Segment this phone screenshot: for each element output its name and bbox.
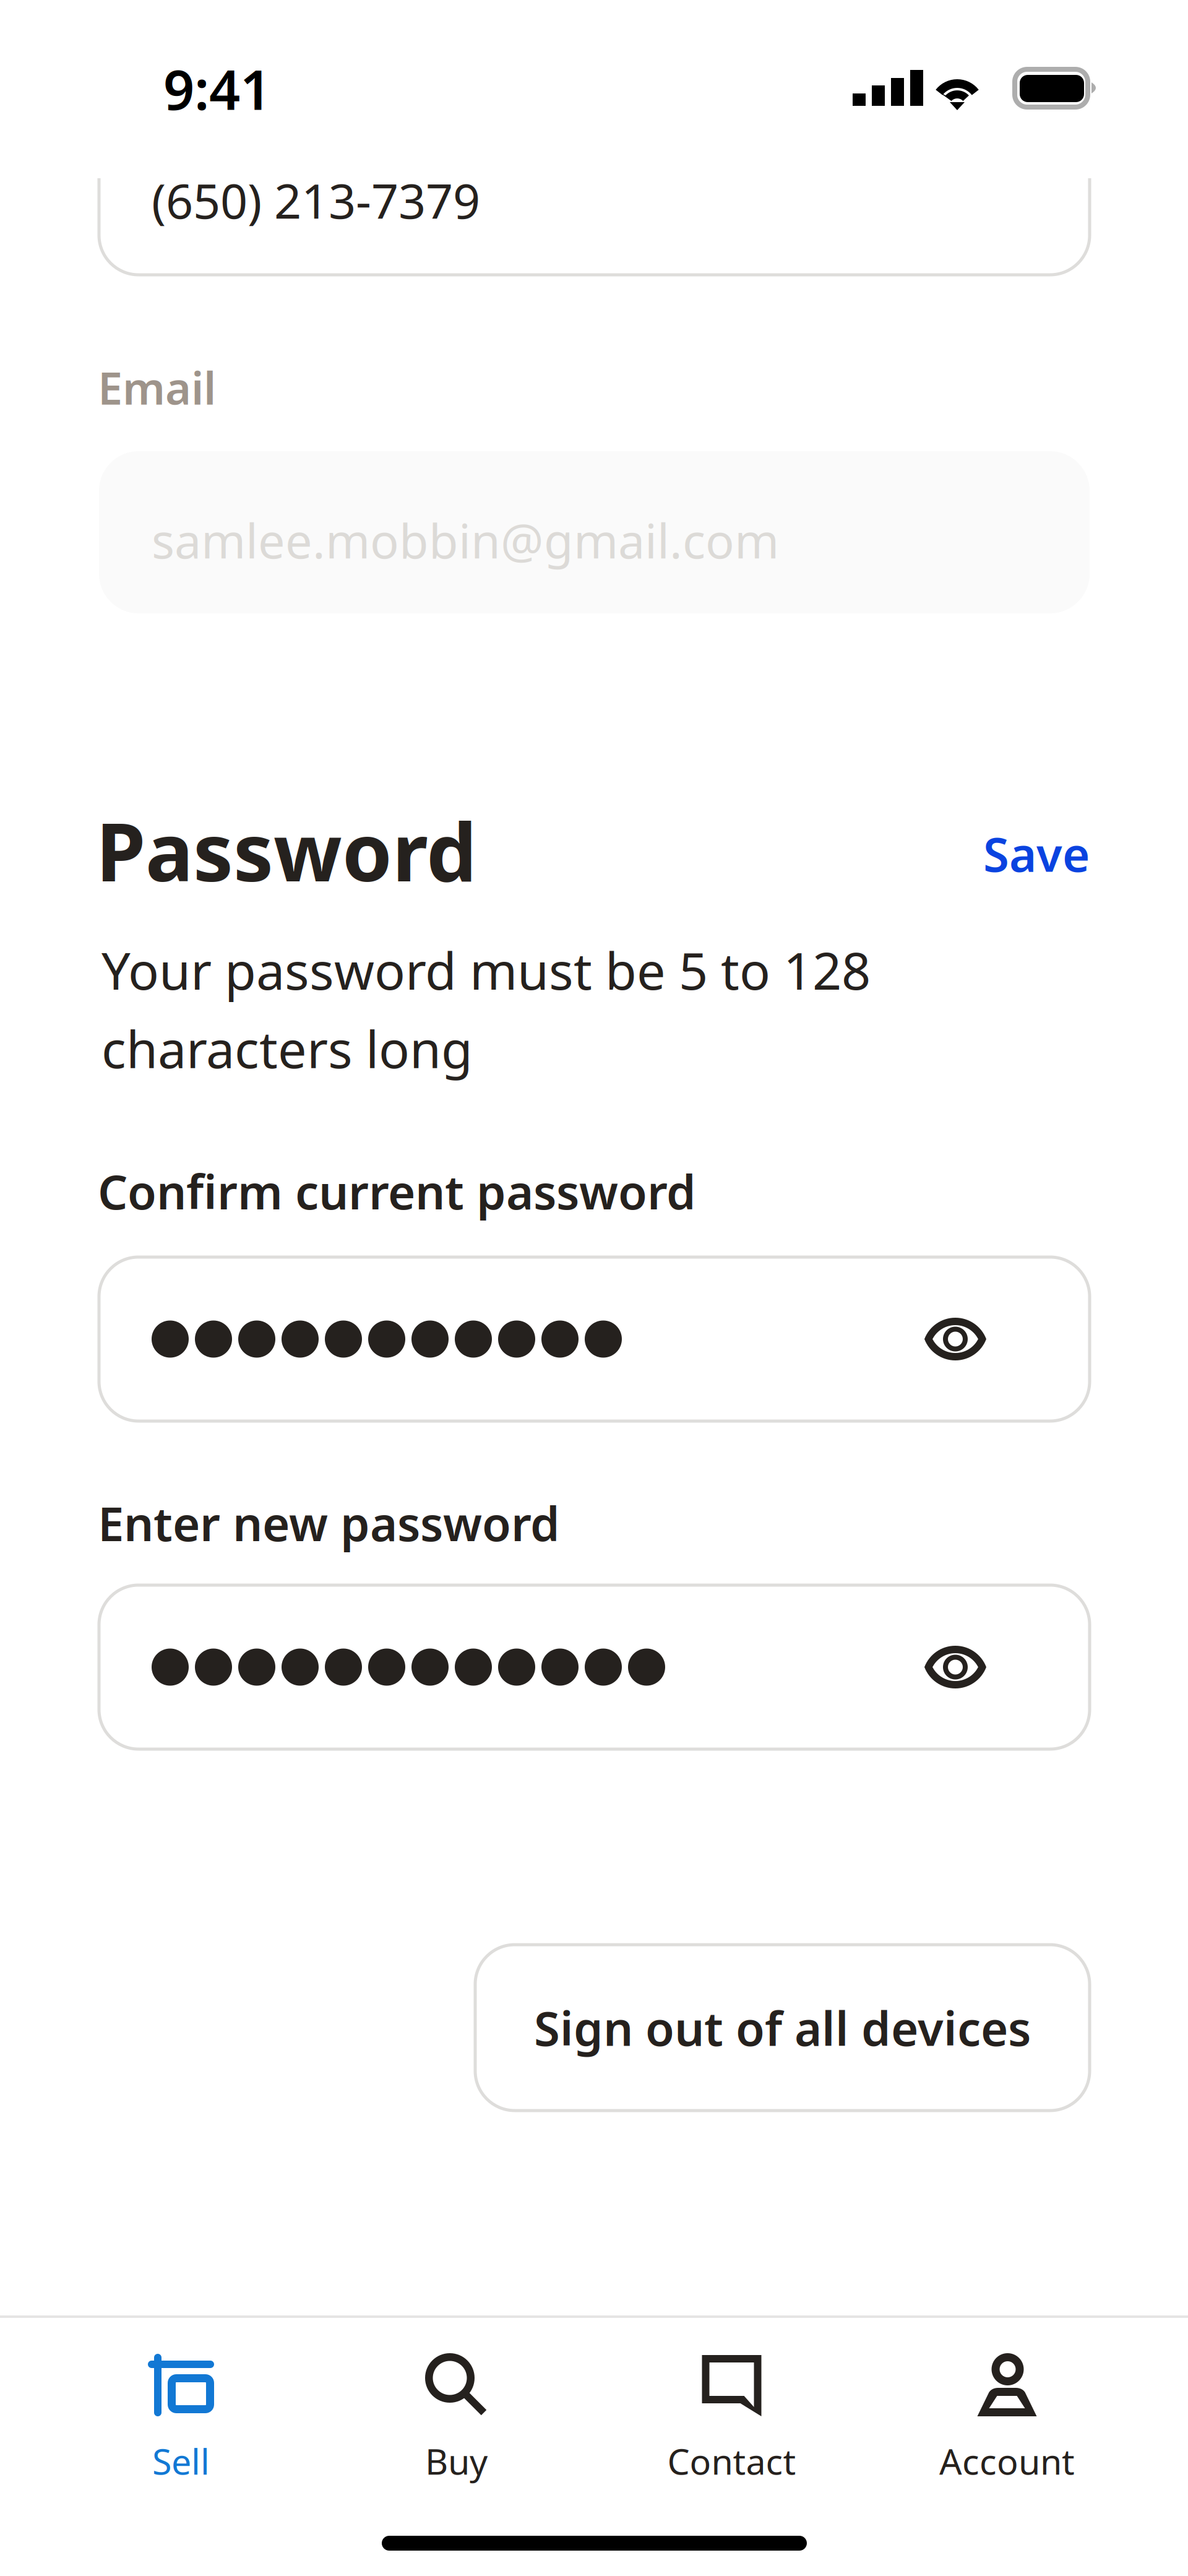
staticText: Contact — [667, 2437, 796, 2484]
button[interactable] — [99, 1585, 1090, 1749]
staticText: Email — [98, 358, 216, 417]
button[interactable]: Sign out of all devices — [475, 1945, 1090, 2111]
button[interactable]: Buy — [319, 2354, 594, 2515]
staticText: Your password must be 5 to 128 character… — [101, 936, 871, 1082]
staticText: Sell — [152, 2437, 210, 2484]
staticText: 9:41 — [163, 53, 271, 125]
staticText: Save — [983, 822, 1090, 885]
staticText: Password — [96, 797, 477, 903]
staticText: Account — [939, 2437, 1075, 2484]
staticText: Confirm current password — [98, 1160, 696, 1222]
staticText: Sign out of all devices — [534, 1996, 1031, 2059]
staticText: samlee.mobbin@gmail.com — [152, 508, 779, 572]
staticText: Enter new password — [98, 1492, 560, 1554]
button[interactable]: Sell — [43, 2354, 319, 2515]
button[interactable]: Save — [953, 819, 1090, 888]
staticText: (650) 213-7379 — [152, 168, 480, 232]
button[interactable]: Account — [869, 2354, 1145, 2515]
button[interactable]: Contact — [594, 2354, 869, 2515]
staticText: Buy — [425, 2437, 488, 2484]
button[interactable] — [99, 1257, 1090, 1421]
